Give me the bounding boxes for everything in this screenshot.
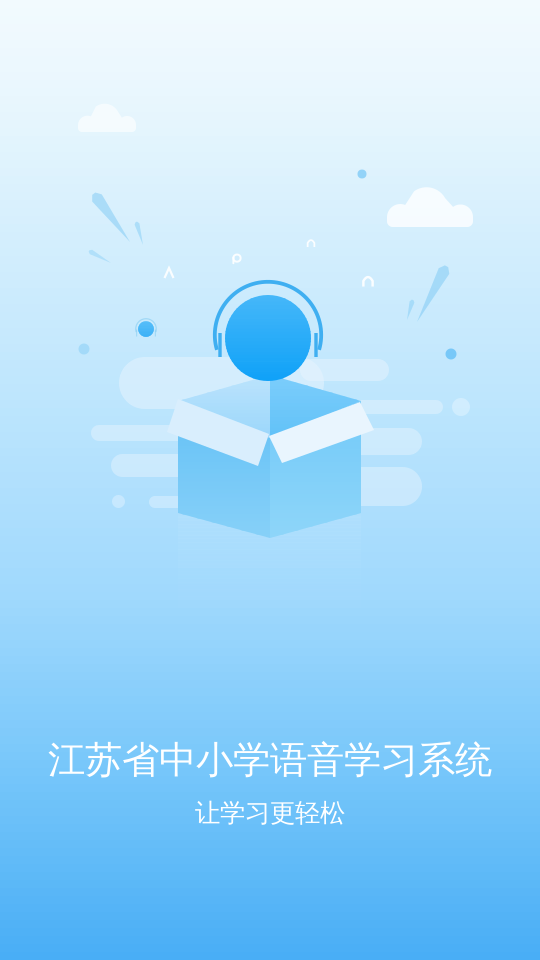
staticText: 江苏省中小学语音学习系统 [48, 737, 492, 783]
staticText: 让学习更轻松 [195, 797, 345, 828]
